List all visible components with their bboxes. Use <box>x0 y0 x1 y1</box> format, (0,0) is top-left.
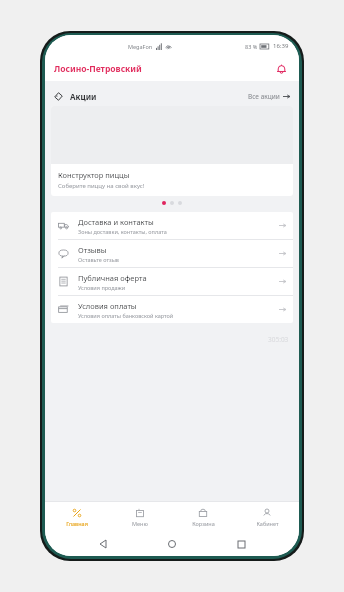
staticText: Зоны доставки, контакты, оплата <box>78 228 167 235</box>
staticText: Меню <box>132 520 148 527</box>
button[interactable]: Публичная оферта <box>51 268 293 296</box>
staticText: Главная <box>66 520 88 527</box>
button[interactable]: Условия оплаты <box>51 296 293 323</box>
staticText: Конструктор пиццы <box>58 170 130 180</box>
staticText: Условия оплаты банковской картой <box>78 312 174 319</box>
button[interactable]: Меню <box>108 502 171 532</box>
button[interactable]: Главная <box>45 502 108 532</box>
button[interactable]: Home <box>162 534 182 554</box>
staticText: Акции <box>70 91 97 102</box>
staticText: MegaFon <box>128 43 153 50</box>
staticText: Кабинет <box>256 520 279 527</box>
button[interactable]: Доставка и контакты <box>51 212 293 240</box>
button[interactable]: Recents <box>231 534 251 554</box>
button[interactable]: Кабинет <box>235 502 299 532</box>
button[interactable]: Notifications <box>272 60 290 78</box>
staticText: Соберите пиццу на свой вкус! <box>58 182 145 190</box>
staticText: Публичная оферта <box>78 273 147 283</box>
button[interactable]: Корзина <box>171 502 235 532</box>
staticText: Все акции <box>248 92 280 101</box>
staticText: 305:03 <box>268 335 289 344</box>
staticText: Условия оплаты <box>78 301 137 311</box>
staticText: 16:39 <box>273 42 289 50</box>
staticText: Отзывы <box>78 245 107 255</box>
staticText: Лосино-Петровский <box>54 63 142 75</box>
button[interactable]: Отзывы <box>51 240 293 268</box>
staticText: Доставка и контакты <box>78 217 154 227</box>
staticText: Оставьте отзыв <box>78 256 119 263</box>
staticText: 83 % <box>245 43 258 50</box>
staticText: Корзина <box>192 520 215 527</box>
button[interactable]: Акции <box>45 86 299 106</box>
button[interactable]: Back <box>94 534 114 554</box>
staticText: Условия продажи <box>78 284 126 291</box>
button[interactable]: Конструктор пиццы <box>51 106 293 196</box>
